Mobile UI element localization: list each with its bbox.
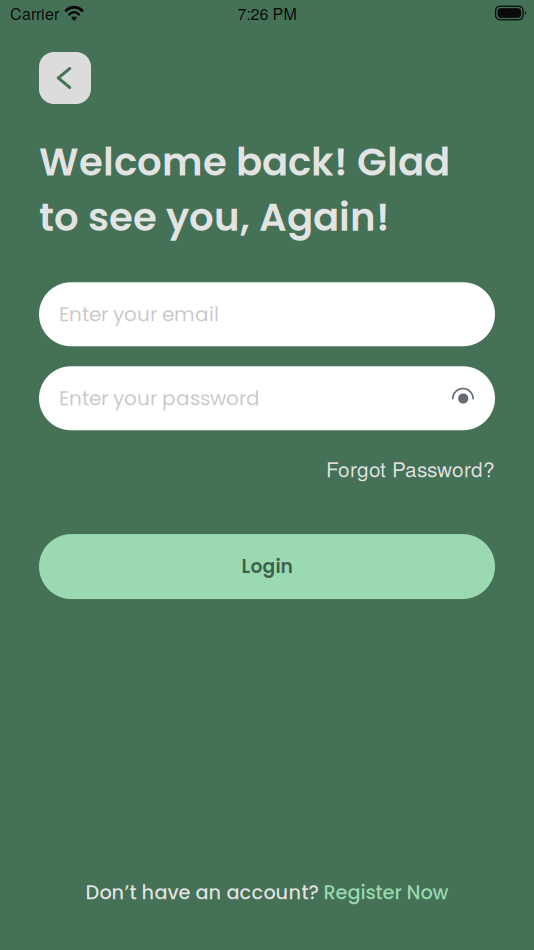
staticText: Carrier	[10, 1, 59, 24]
button[interactable]: Register Now	[323, 879, 448, 906]
staticText: 7:26 PM	[237, 1, 296, 24]
button[interactable]: Show password	[443, 378, 483, 418]
button[interactable]: Forgot Password?	[326, 453, 495, 483]
button[interactable]: Back	[39, 52, 91, 104]
staticText: Forgot Password?	[326, 453, 495, 483]
staticText: Enter your email	[59, 300, 219, 328]
button[interactable]: Login	[39, 534, 495, 599]
staticText: Welcome back! Glad to see you, Again!	[39, 135, 450, 244]
staticText: Enter your password	[59, 384, 260, 412]
staticText: Login	[241, 553, 292, 580]
staticText: Don’t have an account?	[85, 879, 318, 906]
staticText: Register Now	[323, 879, 448, 906]
